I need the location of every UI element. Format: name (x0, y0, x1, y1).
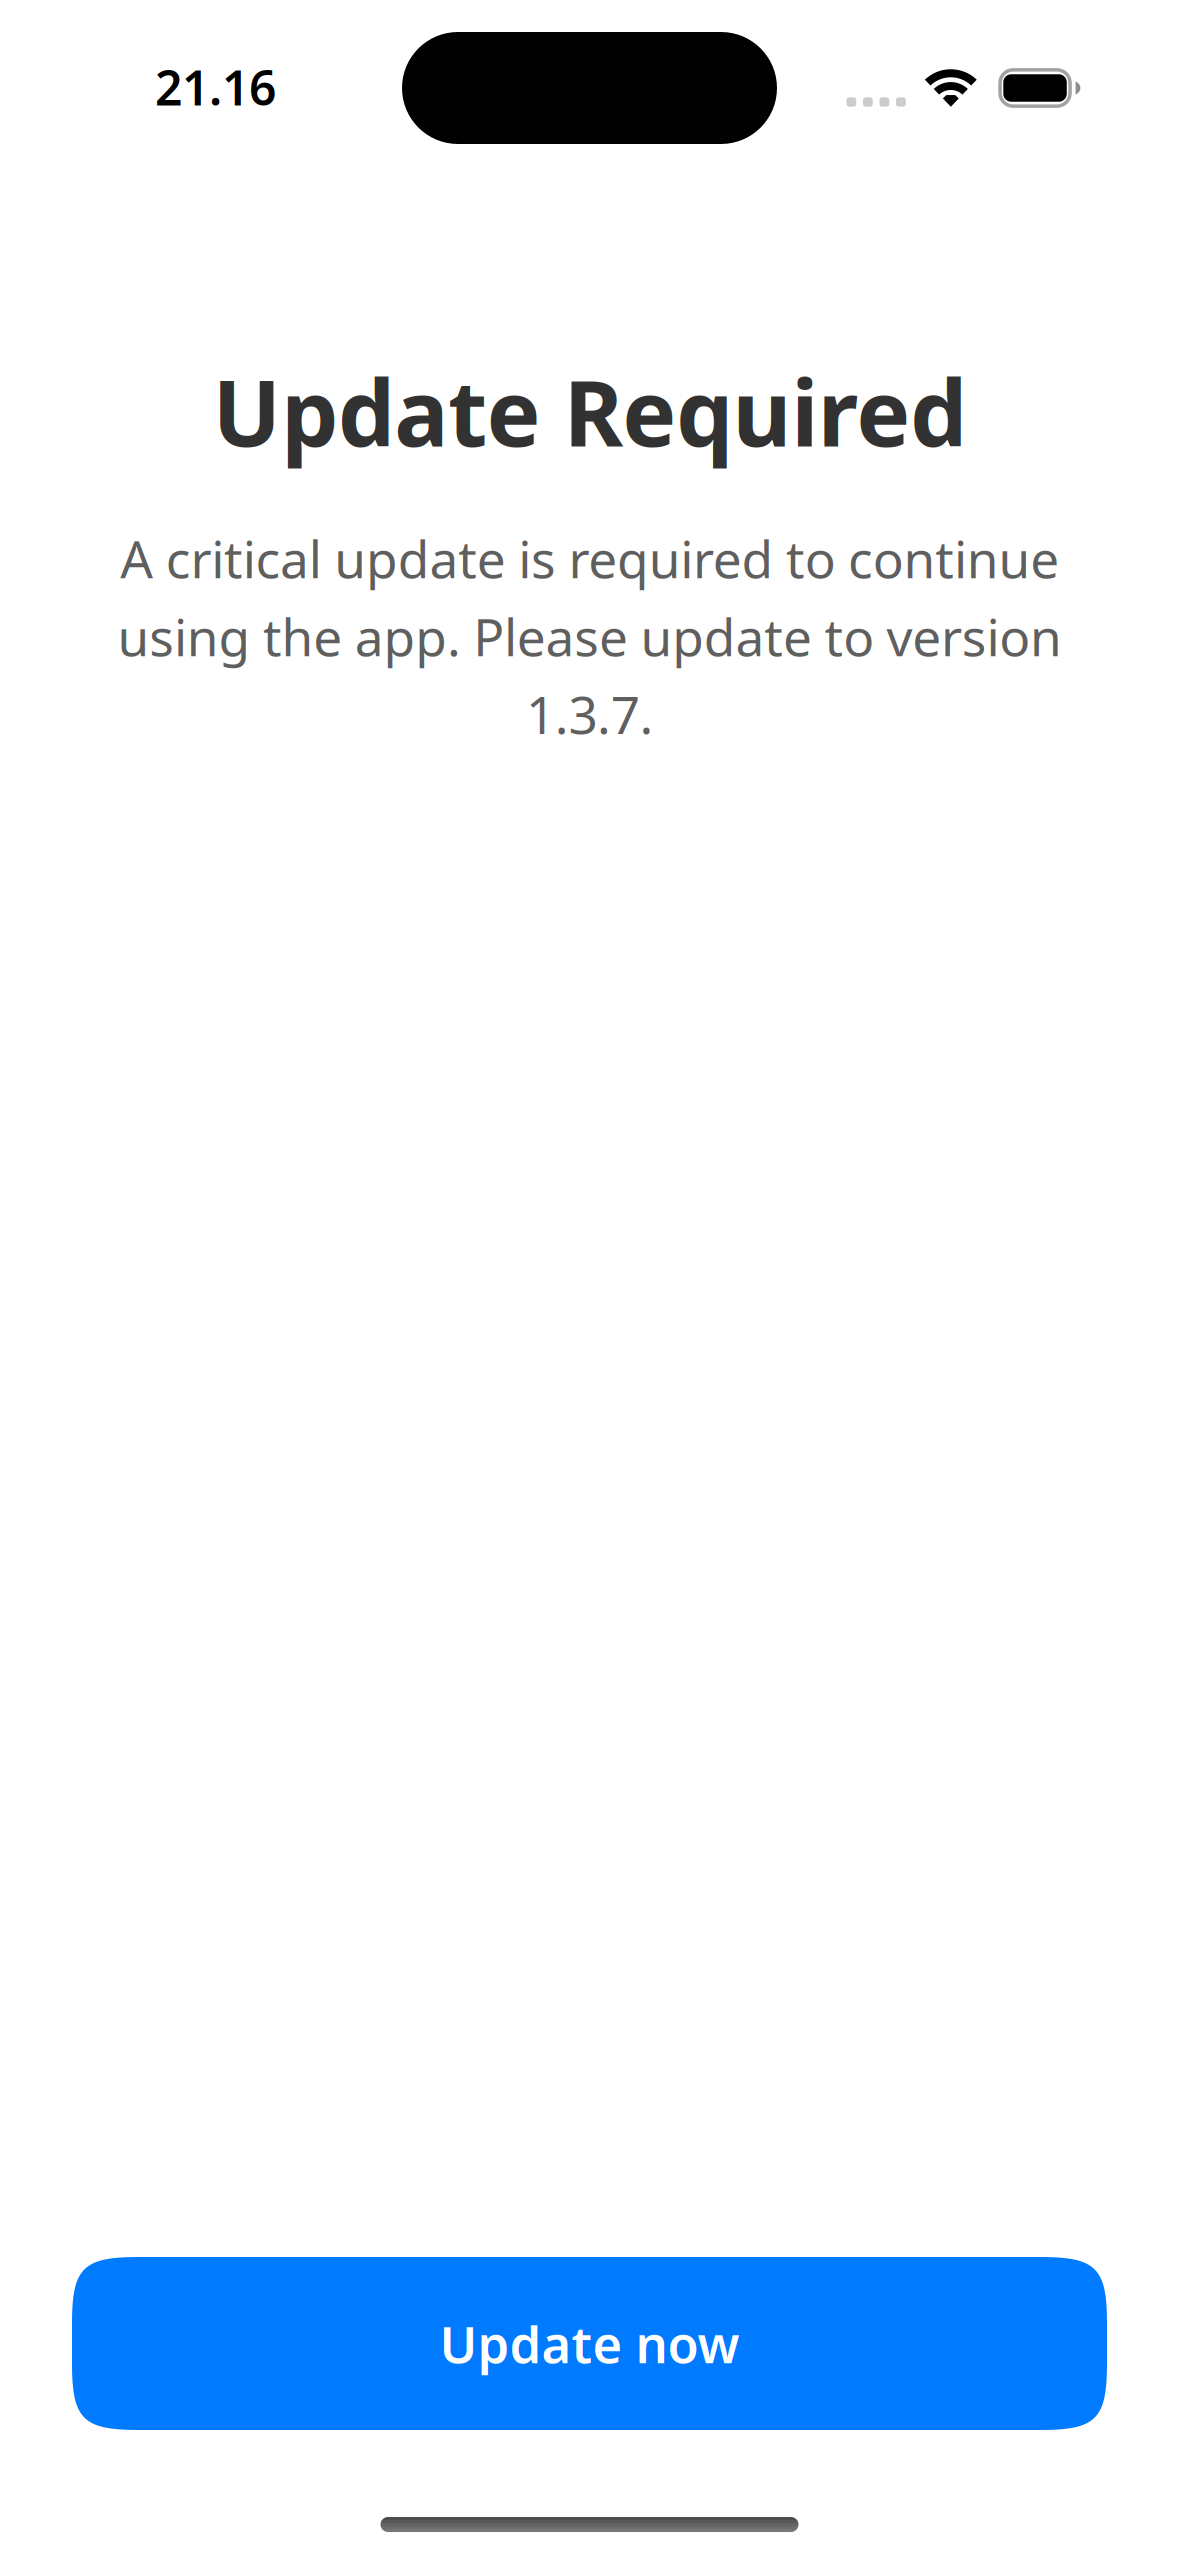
staticText: Update Required (212, 351, 967, 471)
staticText: A critical update is required to continu… (117, 523, 1062, 749)
staticText: 21.16 (155, 55, 276, 119)
button[interactable]: Update now (72, 2257, 1107, 2430)
staticText: Update now (439, 2310, 739, 2377)
